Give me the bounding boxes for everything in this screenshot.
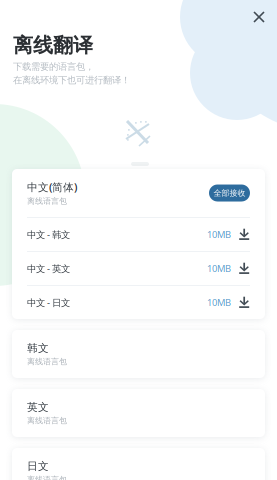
button[interactable]: 中文 - 日文: [12, 286, 265, 319]
button[interactable]: 全部接收: [209, 184, 250, 201]
button[interactable]: 中文 - 英文: [12, 252, 265, 285]
button[interactable]: 中文 - 韩文: [12, 218, 265, 251]
staticText: 中文 - 韩文: [27, 228, 70, 241]
staticText: 离线语言包: [27, 475, 67, 480]
staticText: 下载需要的语言包，: [13, 61, 94, 72]
staticText: 全部接收: [213, 188, 245, 198]
staticText: 离线语言包: [27, 357, 67, 366]
staticText: 10MB: [207, 262, 231, 275]
staticText: 英文: [27, 400, 49, 414]
staticText: 日文: [27, 459, 49, 473]
staticText: 中文 - 日文: [27, 296, 70, 309]
staticText: 离线翻译: [13, 33, 93, 58]
staticText: 10MB: [207, 228, 231, 241]
staticText: 中文 - 英文: [27, 262, 70, 275]
staticText: 离线语言包: [27, 416, 67, 425]
staticText: 中文(简体): [27, 180, 77, 194]
staticText: 离线语言包: [27, 196, 67, 206]
staticText: 在离线环境下也可进行翻译！: [13, 74, 130, 86]
button[interactable]: Close: [247, 5, 271, 29]
staticText: 10MB: [207, 296, 231, 309]
staticText: 韩文: [27, 341, 49, 355]
